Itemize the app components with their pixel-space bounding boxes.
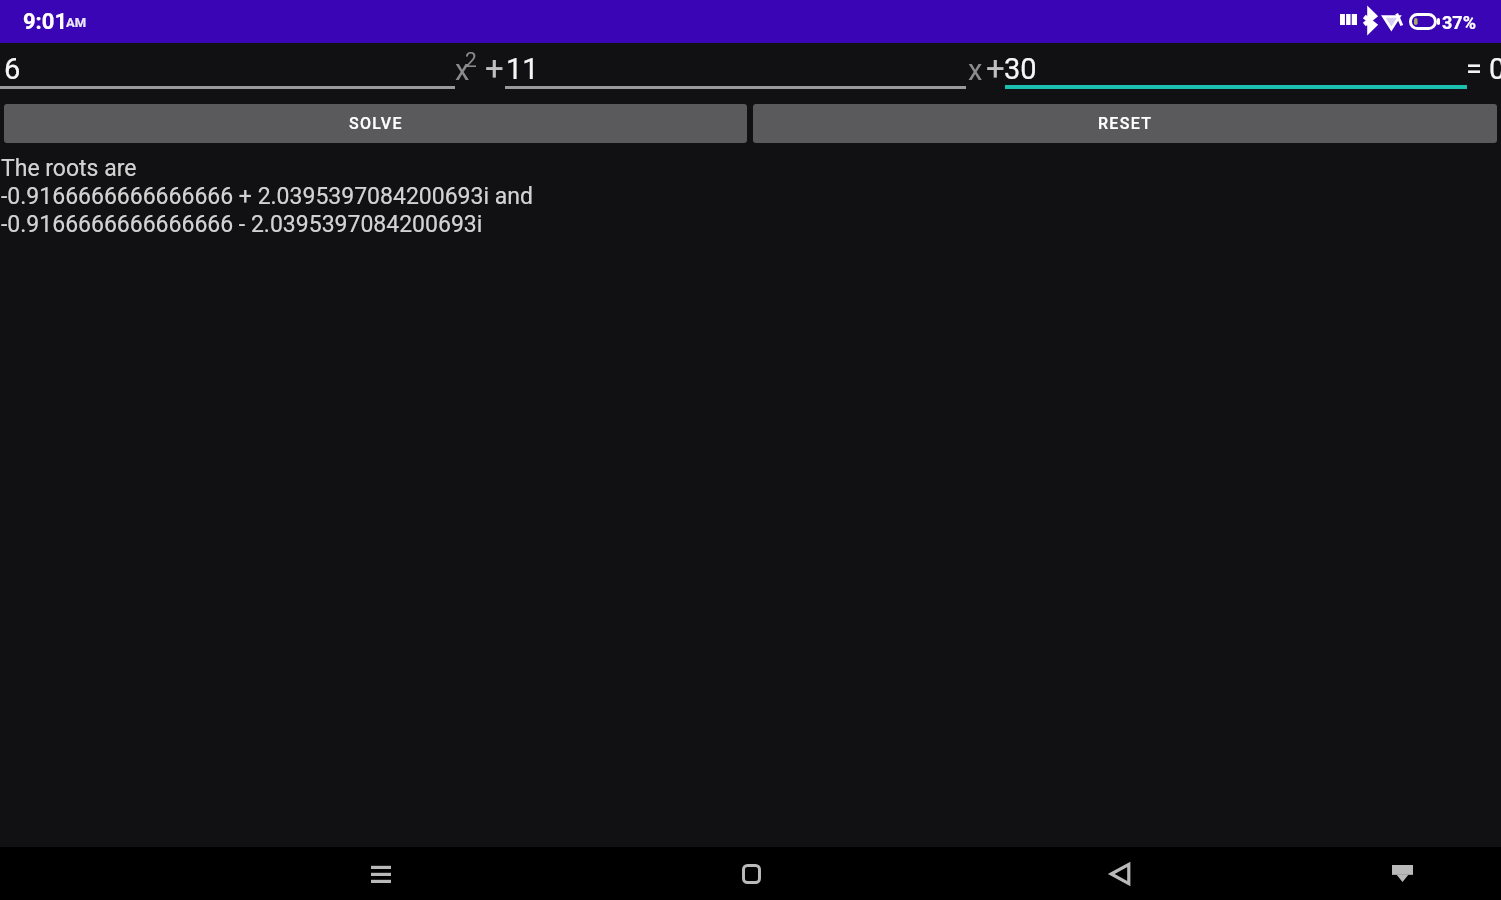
button[interactable]: SOLVE: [4, 104, 747, 143]
button[interactable]: Back: [1089, 847, 1151, 900]
staticText: 6: [4, 52, 21, 86]
staticText: SOLVE: [349, 114, 403, 133]
button[interactable]: Coefficient 6: [0, 43, 455, 89]
staticText: x: [968, 53, 983, 87]
staticText: 37%: [1442, 12, 1476, 33]
staticText: AM: [66, 15, 87, 30]
button[interactable]: Coefficient 11: [505, 43, 966, 89]
button[interactable]: Hide keyboard: [1371, 847, 1433, 900]
button[interactable]: RESET: [753, 104, 1497, 143]
staticText: 2: [465, 48, 477, 73]
staticText: = 0: [1466, 52, 1501, 86]
staticText: +: [986, 49, 1005, 88]
staticText: +: [485, 49, 504, 88]
staticText: 9:01: [23, 9, 68, 35]
staticText: x: [455, 53, 470, 87]
button[interactable]: Coefficient 30: [1005, 43, 1467, 89]
staticText: 11: [506, 52, 539, 86]
button[interactable]: Home: [720, 847, 782, 900]
staticText: 30: [1004, 52, 1037, 86]
staticText: The roots are -0.9166666666666666 + 2.03…: [1, 155, 1501, 238]
button[interactable]: Recent apps: [350, 847, 412, 900]
staticText: RESET: [1098, 114, 1153, 133]
